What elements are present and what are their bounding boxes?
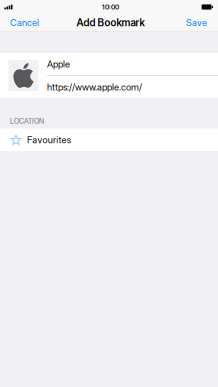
button[interactable]: Cancel: [0, 14, 45, 32]
button[interactable]: https://www.apple.com/: [38, 76, 218, 98]
staticText: Save: [186, 17, 207, 28]
staticText: Favourites: [27, 134, 71, 145]
staticText: 10:00: [102, 3, 119, 11]
button[interactable]: Favourites: [0, 128, 218, 151]
button[interactable]: Apple: [38, 53, 218, 75]
staticText: Cancel: [10, 17, 39, 28]
staticText: LOCATION: [10, 117, 44, 125]
button[interactable]: Save: [180, 14, 218, 32]
staticText: https://www.apple.com/: [47, 81, 142, 93]
staticText: Apple: [47, 58, 70, 70]
staticText: Add Bookmark: [76, 16, 144, 29]
